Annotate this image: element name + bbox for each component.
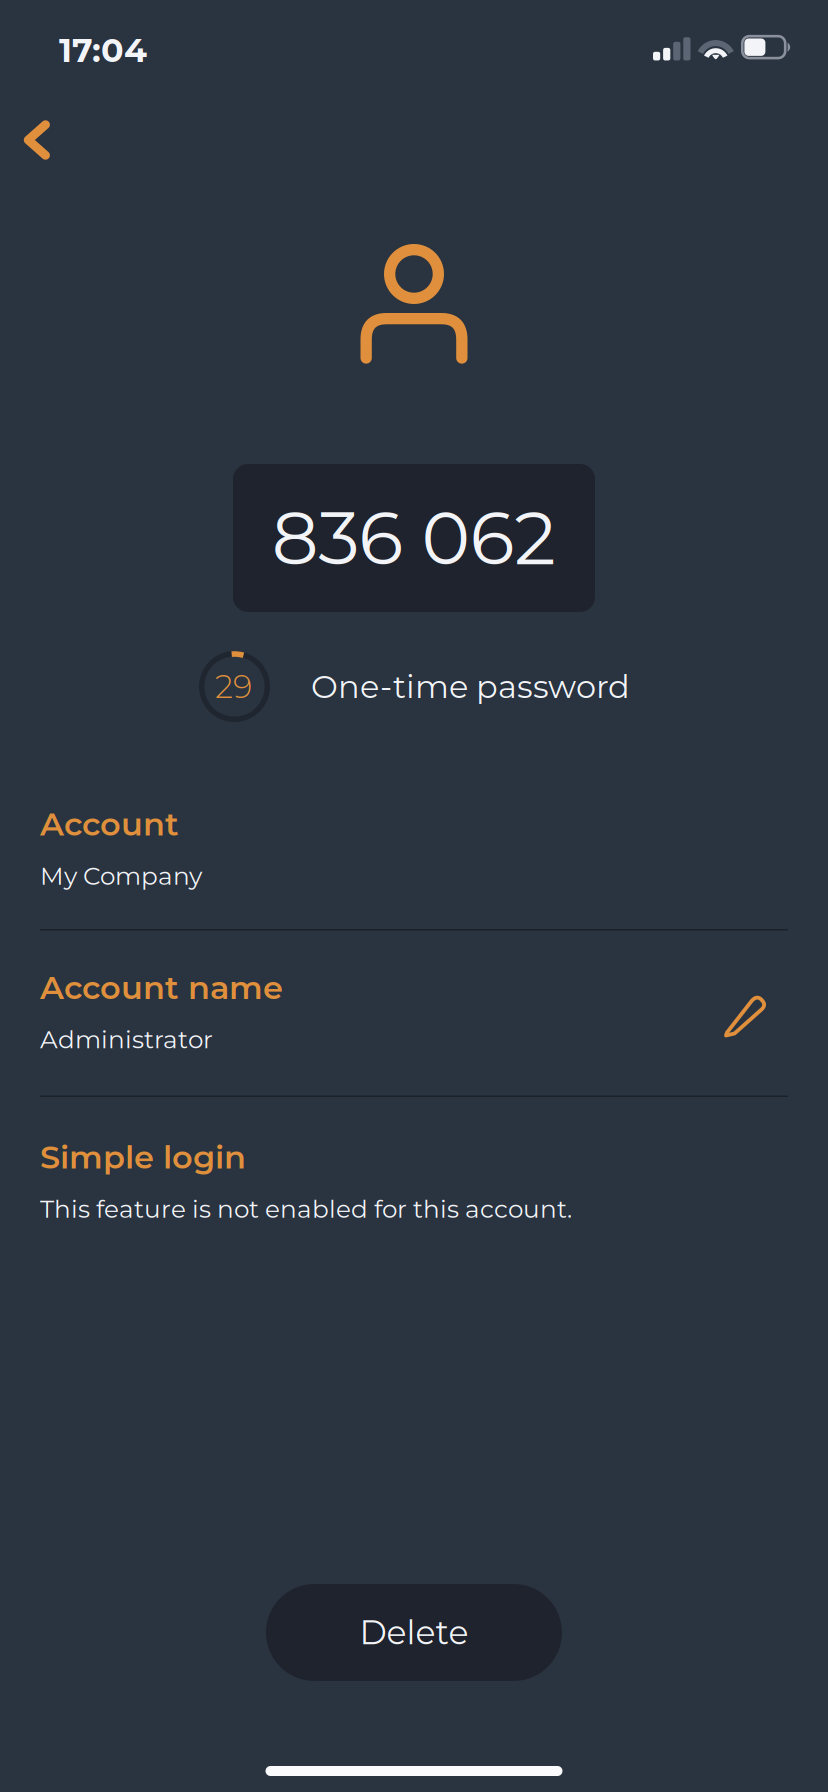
staticText: Delete xyxy=(359,1612,468,1653)
button[interactable]: Delete xyxy=(266,1584,562,1681)
staticText: Account name xyxy=(40,968,283,1007)
staticText: My Company xyxy=(40,861,202,891)
button[interactable]: Edit account name xyxy=(724,986,788,1038)
staticText: 17:04 xyxy=(59,30,147,70)
button[interactable]: Back xyxy=(3,112,71,168)
button[interactable]: 836 062 xyxy=(233,464,595,612)
staticText: 836 062 xyxy=(272,493,556,583)
staticText: Administrator xyxy=(40,1024,213,1055)
staticText: This feature is not enabled for this acc… xyxy=(40,1194,572,1224)
staticText: 29 xyxy=(215,667,252,706)
staticText: Account xyxy=(40,804,179,843)
staticText: Simple login xyxy=(40,1137,246,1176)
staticText: One-time password xyxy=(311,667,630,706)
